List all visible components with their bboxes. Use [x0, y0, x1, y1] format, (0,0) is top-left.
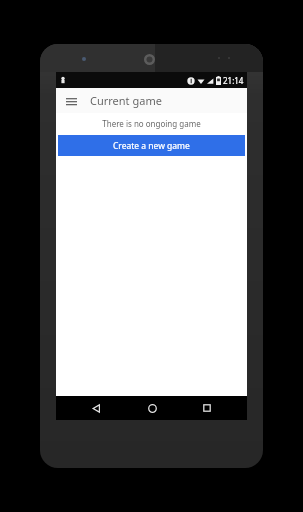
- button[interactable]: Recent apps: [192, 396, 222, 420]
- button[interactable]: Create a new game: [58, 135, 245, 156]
- staticText: Create a new game: [113, 140, 190, 152]
- staticText: 21:14: [223, 75, 244, 86]
- button[interactable]: Back: [81, 396, 111, 420]
- button[interactable]: Home: [137, 396, 167, 420]
- staticText: Current game: [90, 93, 162, 108]
- staticText: There is no ongoing game: [102, 118, 201, 129]
- button[interactable]: Open navigation menu: [61, 91, 81, 111]
